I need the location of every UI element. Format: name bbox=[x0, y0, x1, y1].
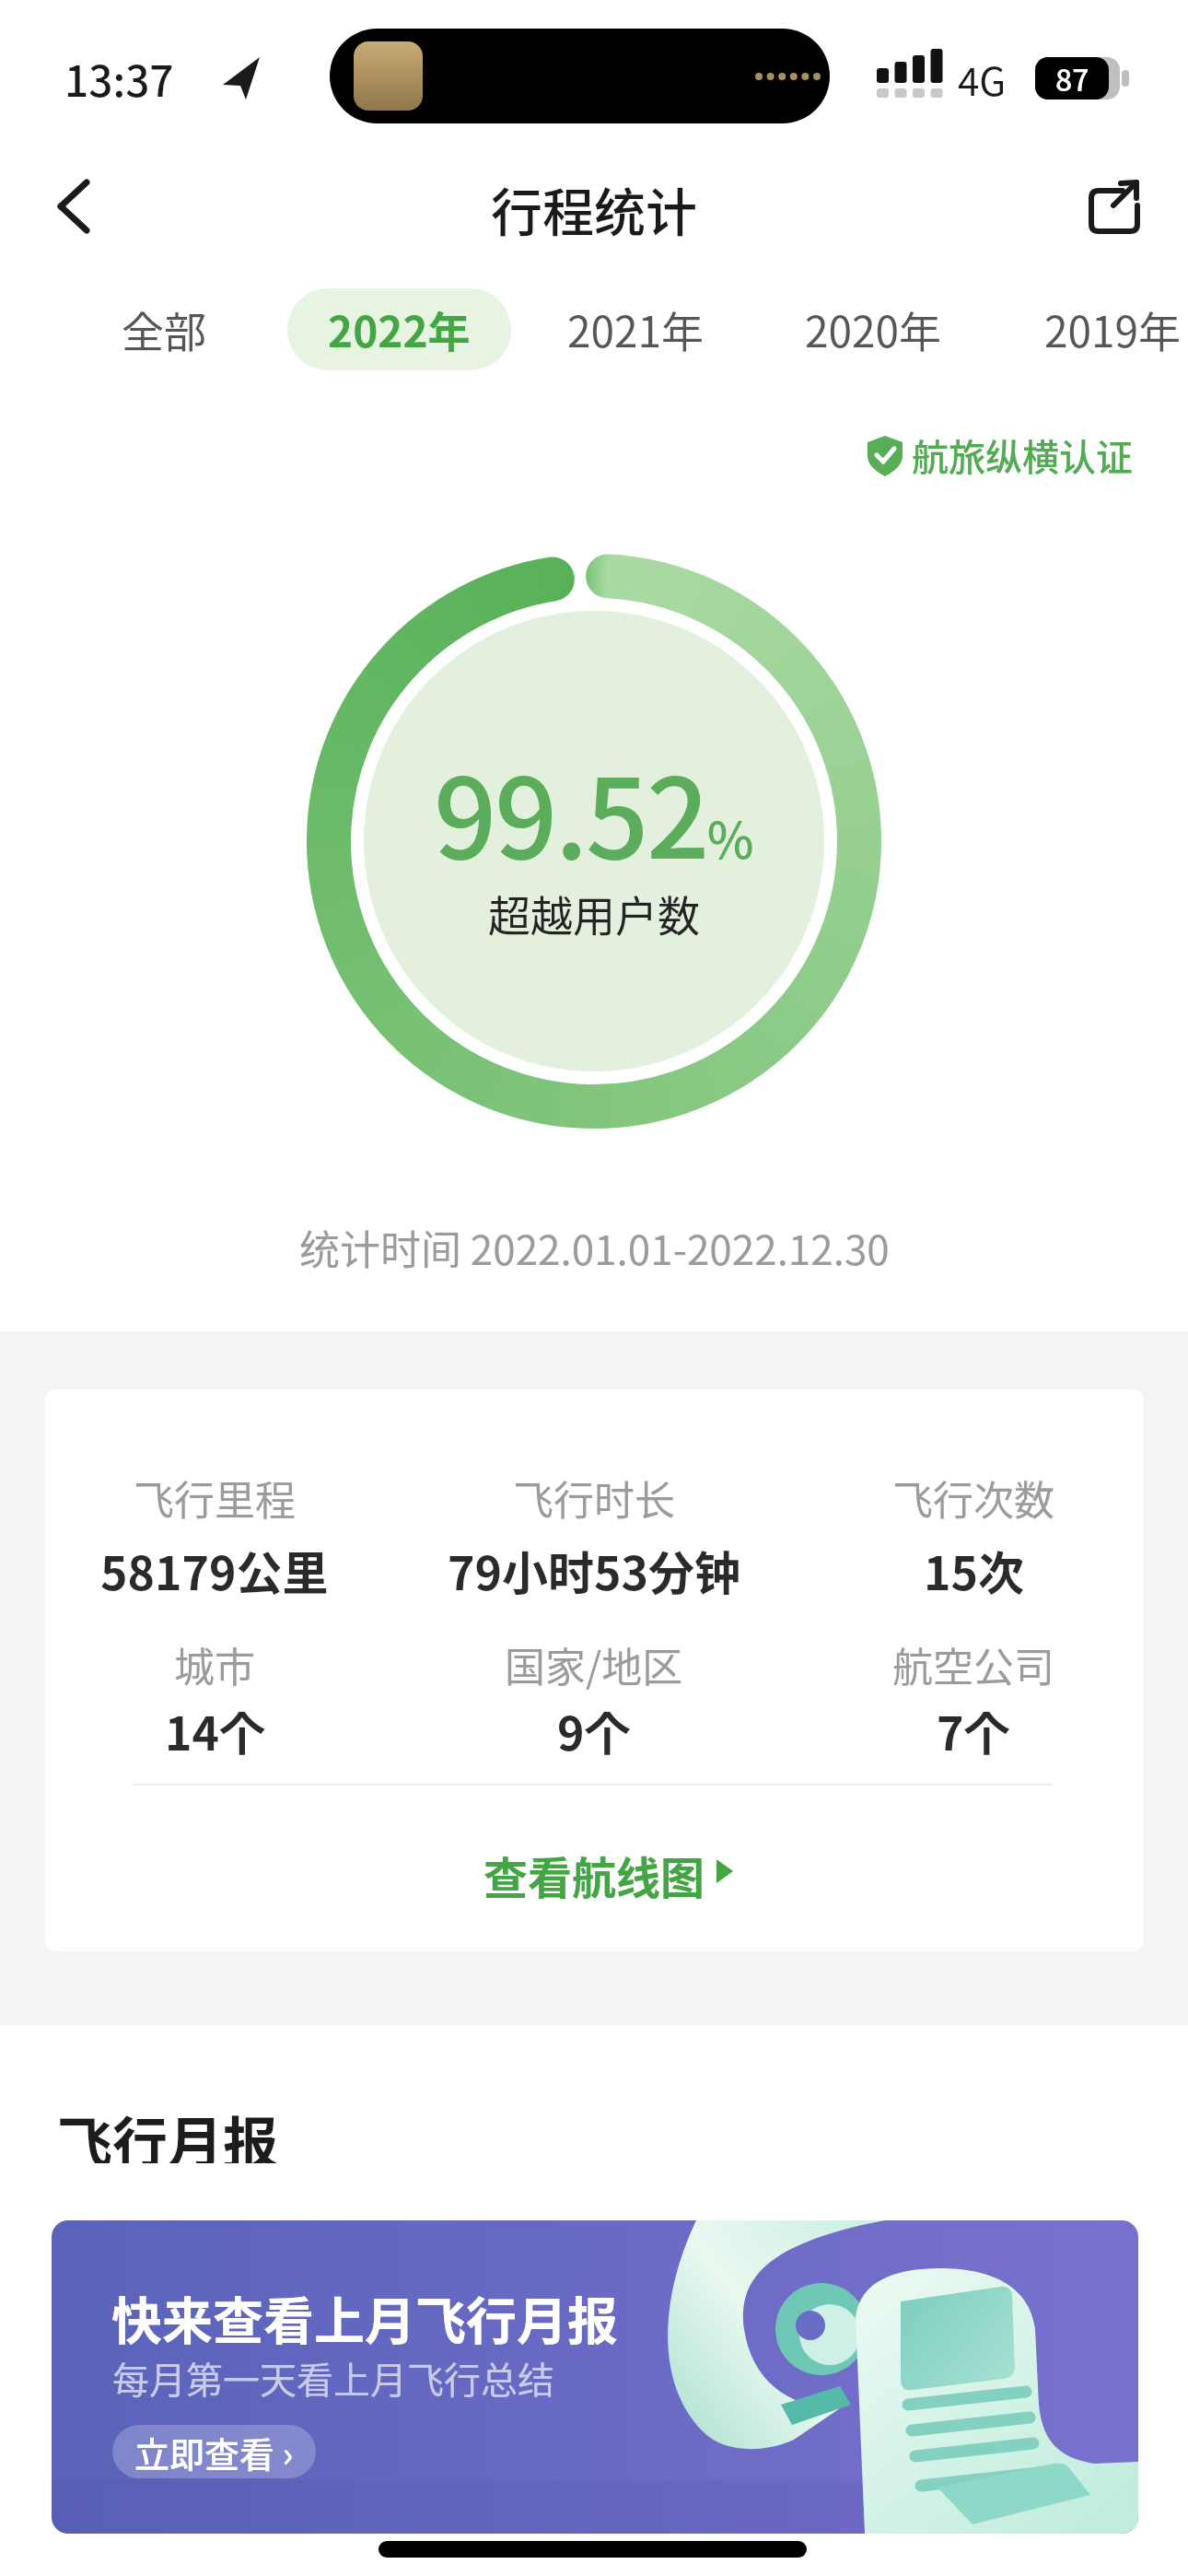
staticText: 查看航线图 bbox=[483, 1843, 705, 1903]
staticText: 2021年 bbox=[567, 299, 705, 360]
staticText: 城市 bbox=[174, 1635, 255, 1691]
staticText: 飞行次数 bbox=[892, 1469, 1054, 1524]
staticText: 99.52% bbox=[434, 731, 754, 891]
staticText: 2020年 bbox=[805, 299, 942, 360]
button[interactable]: 查看航线图 bbox=[410, 1843, 778, 1903]
staticText: 13:37 bbox=[64, 48, 174, 109]
staticText: 超越用户数 bbox=[488, 883, 700, 938]
button[interactable]: 2022年 bbox=[287, 288, 511, 370]
staticText: 2019年 bbox=[1044, 299, 1182, 360]
staticText: 4G bbox=[958, 51, 1007, 107]
button[interactable]: 2019年 bbox=[1030, 287, 1188, 371]
staticText: 79小时53分钟 bbox=[448, 1537, 740, 1598]
staticText: 全部 bbox=[122, 299, 206, 360]
staticText: 国家/地区 bbox=[505, 1635, 683, 1691]
staticText: 9个 bbox=[557, 1697, 631, 1758]
button[interactable]: 全部 bbox=[99, 287, 228, 371]
button[interactable]: 2021年 bbox=[553, 287, 718, 371]
staticText: 统计时间 2022.01.01-2022.12.30 bbox=[299, 1218, 890, 1277]
button[interactable]: 2020年 bbox=[790, 287, 956, 371]
staticText: 87 bbox=[1055, 57, 1089, 100]
button[interactable] bbox=[1068, 166, 1160, 251]
button[interactable]: 立即查看 › bbox=[112, 2425, 316, 2478]
staticText: 行程统计 bbox=[491, 171, 697, 246]
button[interactable]: 航旅纵横认证 bbox=[912, 426, 1151, 485]
staticText: 航空公司 bbox=[892, 1635, 1054, 1691]
staticText: 飞行时长 bbox=[513, 1469, 675, 1524]
staticText: 快来查看上月飞行月报 bbox=[111, 2280, 619, 2345]
staticText: 航旅纵横认证 bbox=[912, 428, 1133, 482]
staticText: 7个 bbox=[937, 1697, 1010, 1758]
staticText: 飞行月报 bbox=[57, 2099, 278, 2163]
staticText: 58179公里 bbox=[100, 1537, 329, 1598]
staticText: 15次 bbox=[924, 1537, 1024, 1598]
button[interactable]: 快来查看上月飞行月报 bbox=[52, 2220, 1138, 2534]
staticText: 飞行里程 bbox=[134, 1469, 296, 1524]
staticText: 每月第一天看上月飞行总结 bbox=[112, 2351, 554, 2403]
staticText: 立即查看 › bbox=[134, 2427, 294, 2477]
button[interactable] bbox=[28, 166, 120, 251]
staticText: 2022年 bbox=[328, 299, 471, 360]
staticText: 14个 bbox=[165, 1697, 265, 1758]
